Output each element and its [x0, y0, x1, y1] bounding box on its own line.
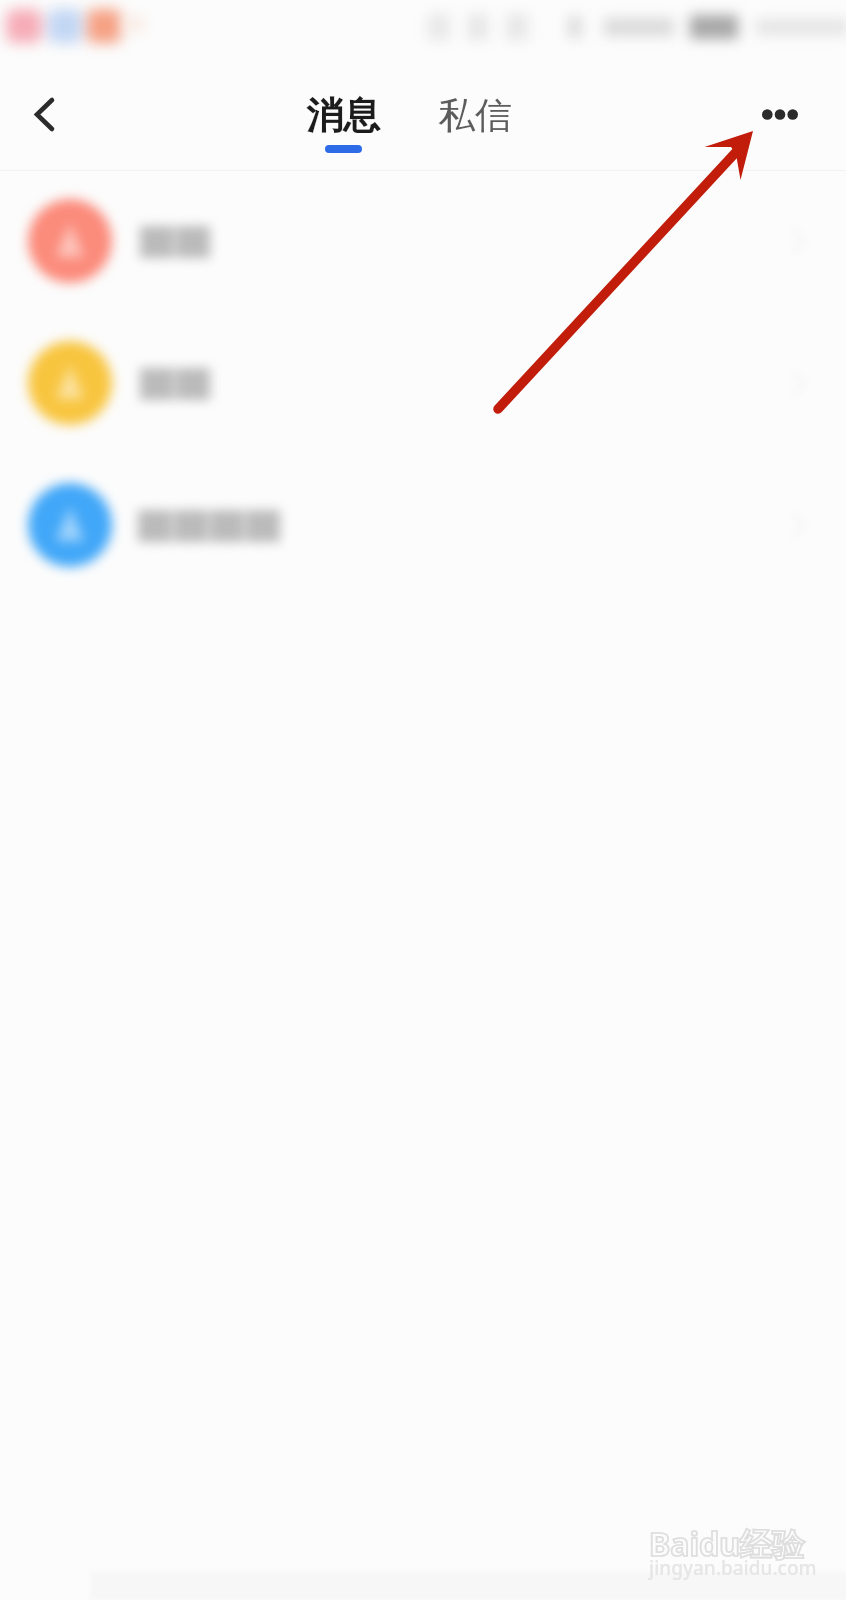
- staticText: 消息: [306, 92, 380, 139]
- button[interactable]: System messages: [0, 454, 846, 596]
- staticText: Baidu经验: [649, 1522, 805, 1566]
- button[interactable]: 私信: [438, 74, 512, 121]
- button[interactable]: 消息: [306, 74, 380, 121]
- button[interactable]: Back: [8, 58, 80, 170]
- staticText: jingyan.baidu.com: [649, 1555, 817, 1581]
- button[interactable]: Notifications: [0, 170, 846, 312]
- button[interactable]: Mentions: [0, 312, 846, 454]
- button[interactable]: More options: [742, 58, 818, 170]
- staticText: 私信: [438, 92, 512, 139]
